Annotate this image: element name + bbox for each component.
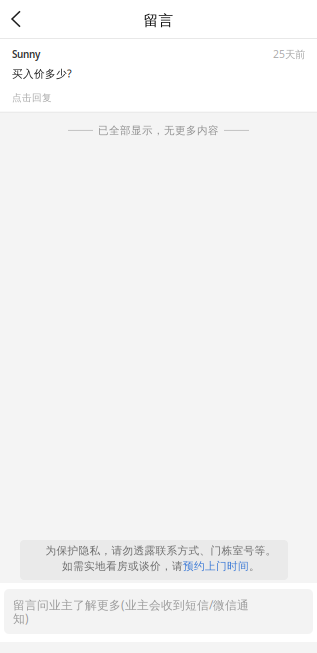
- staticText: 预约上门时间: [183, 559, 249, 573]
- button[interactable]: 预约上门时间: [183, 559, 249, 573]
- staticText: 点击回复: [12, 92, 52, 104]
- button[interactable]: Sunny: [0, 39, 317, 112]
- staticText: 。: [249, 559, 260, 573]
- staticText: 留言问业主了解更多(业主会收到短信/微信通知): [13, 597, 249, 626]
- staticText: 25天前: [273, 47, 305, 61]
- button[interactable]: 留言问业主了解更多(业主会收到短信/微信通知): [4, 589, 313, 634]
- staticText: 为保护隐私，请勿透露联系方式、门栋室号等。: [45, 544, 276, 557]
- staticText: 留言: [143, 11, 173, 30]
- staticText: 如需实地看房或谈价，请: [62, 559, 183, 573]
- staticText: 买入价多少?: [12, 66, 72, 81]
- staticText: 已全部显示，无更多内容: [98, 124, 219, 137]
- button[interactable]: 返回: [0, 0, 32, 38]
- staticText: Sunny: [12, 48, 40, 61]
